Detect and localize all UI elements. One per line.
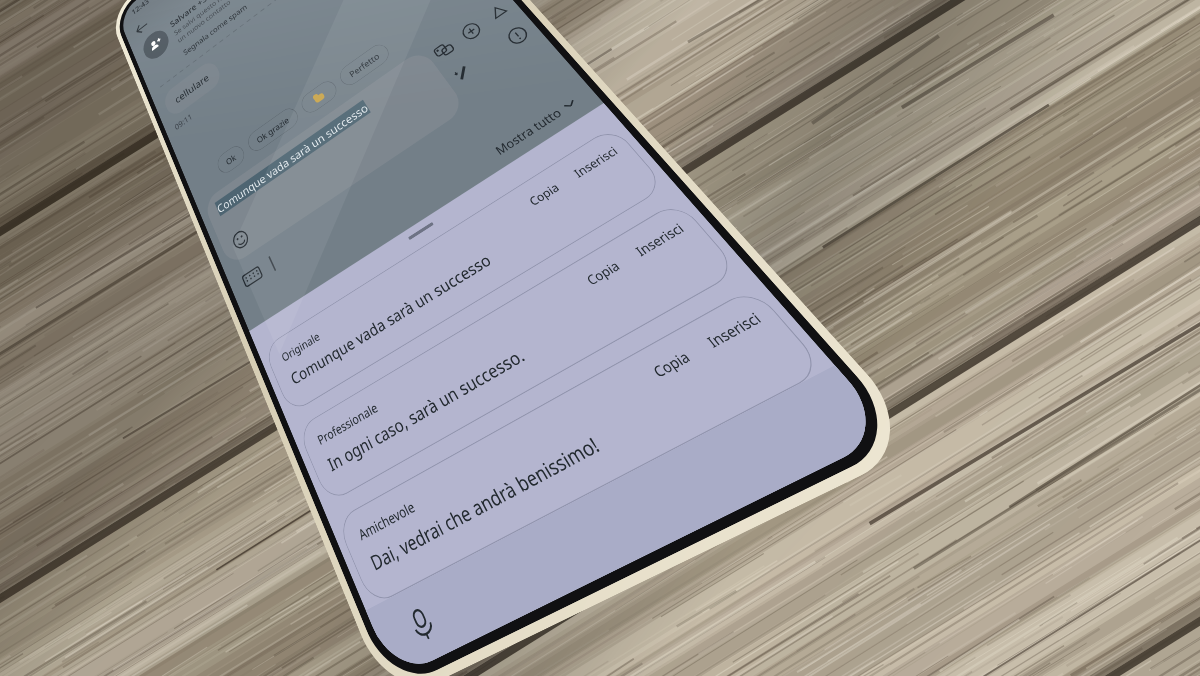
button[interactable]: Segnala come spam bbox=[182, 1, 249, 57]
button[interactable]: Mostra tutto bbox=[492, 95, 580, 158]
staticText: In ogni caso, sarà un successo. bbox=[324, 343, 529, 477]
staticText: Mostra tutto bbox=[492, 104, 565, 158]
button[interactable]: Tastiera bbox=[240, 262, 264, 291]
button[interactable]: Aggiungi bbox=[449, 10, 494, 52]
button[interactable]: Professionale bbox=[297, 200, 740, 504]
button[interactable]: Modifica bbox=[440, 52, 486, 95]
staticText: Perfetto bbox=[347, 50, 381, 79]
button[interactable]: Pollice in su bbox=[298, 77, 340, 117]
button[interactable]: Ok grazie bbox=[245, 104, 302, 155]
button[interactable]: Emoji bbox=[229, 225, 252, 253]
button[interactable]: Immagine bbox=[422, 29, 467, 71]
button[interactable]: Inserisci bbox=[703, 308, 766, 352]
staticText: 12:43 bbox=[130, 0, 150, 17]
staticText: un nuovo contatto bbox=[176, 0, 232, 44]
button[interactable]: Ok bbox=[214, 142, 248, 177]
staticText: Originale bbox=[279, 328, 323, 365]
button[interactable]: Indietro bbox=[130, 13, 154, 42]
staticText: Salvare +390175518060 bbox=[168, 0, 256, 29]
button[interactable]: Copia bbox=[649, 347, 695, 382]
button[interactable]: Invia SMS bbox=[476, 0, 523, 33]
button[interactable]: Originale bbox=[263, 126, 667, 414]
button[interactable]: Amichevole bbox=[335, 286, 826, 607]
staticText: Ok bbox=[224, 151, 237, 167]
staticText: Dai, vedrai che andrà benissimo! bbox=[366, 430, 605, 577]
staticText: Comunque vada sarà un successo bbox=[215, 100, 371, 216]
button[interactable]: Microfono bbox=[401, 599, 443, 648]
button[interactable]: Perfetto bbox=[336, 40, 393, 89]
button[interactable]: Inserisci bbox=[632, 219, 688, 260]
staticText: Amichevole bbox=[356, 497, 418, 545]
staticText: Ok grazie bbox=[255, 114, 291, 145]
button[interactable]: Copia bbox=[526, 179, 563, 209]
button[interactable]: Dettagli bbox=[494, 14, 542, 57]
staticText: 09:11 bbox=[173, 111, 194, 132]
staticText: Professionale bbox=[315, 399, 381, 449]
staticText: cellulare bbox=[173, 71, 211, 106]
button[interactable]: Copia bbox=[583, 257, 624, 289]
staticText: Se salvi questo numero, verrà agg bbox=[173, 0, 273, 37]
staticText: Comunque vada sarà un successo bbox=[287, 249, 495, 389]
button[interactable]: Inserisci bbox=[571, 143, 621, 181]
